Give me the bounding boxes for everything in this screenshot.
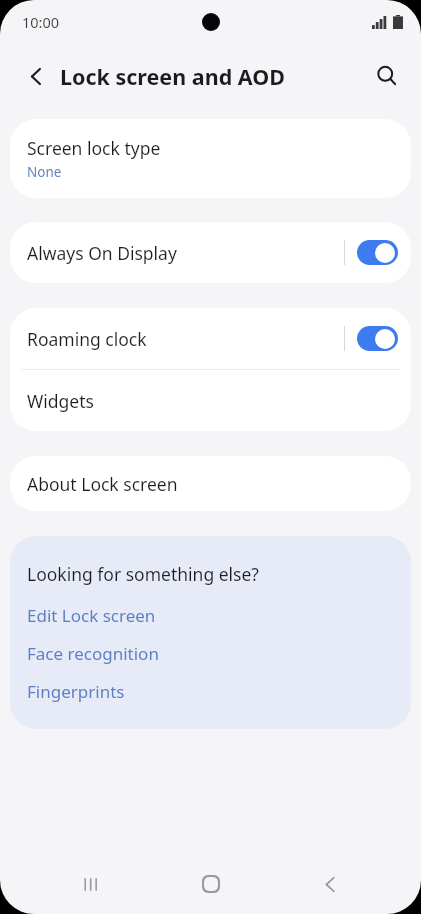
button[interactable]: Toggle on (357, 240, 398, 265)
staticText: 10:00 (22, 12, 60, 32)
button[interactable]: Fingerprints (27, 680, 125, 703)
button[interactable]: Screen lock type (10, 119, 411, 198)
button[interactable]: Face recognition (27, 642, 159, 665)
button[interactable]: Search (365, 54, 409, 98)
button[interactable]: About Lock screen (10, 456, 411, 511)
staticText: Lock screen and AOD (60, 62, 285, 91)
staticText: Looking for something else? (27, 562, 259, 586)
staticText: Screen lock type (27, 136, 161, 160)
button[interactable]: Back (14, 54, 58, 98)
button[interactable]: Roaming clock (10, 308, 411, 369)
button[interactable]: Always On Display (10, 222, 411, 283)
button[interactable]: Widgets (10, 370, 411, 431)
staticText: Roaming clock (27, 327, 344, 351)
staticText: About Lock screen (27, 472, 178, 496)
button[interactable]: Toggle on (357, 326, 398, 351)
button[interactable]: Recent apps (63, 856, 119, 912)
button[interactable]: Back (302, 856, 358, 912)
staticText: Face recognition (27, 642, 159, 665)
button[interactable]: Home (183, 856, 239, 912)
staticText: Fingerprints (27, 680, 125, 703)
button[interactable]: Edit Lock screen (27, 604, 156, 627)
staticText: None (27, 163, 62, 181)
staticText: Widgets (27, 389, 94, 413)
staticText: Always On Display (27, 241, 344, 265)
staticText: Edit Lock screen (27, 604, 156, 627)
